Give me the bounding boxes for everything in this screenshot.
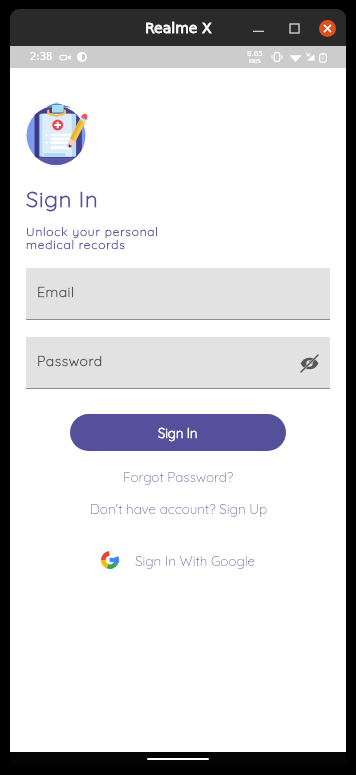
staticText: Sign In With Google — [135, 552, 256, 569]
staticText: Don't have account? Sign Up — [90, 500, 267, 517]
staticText: Sign In — [26, 185, 99, 213]
button[interactable]: Don't have account? Sign Up — [82, 495, 275, 522]
button[interactable]: Email — [26, 268, 330, 319]
button[interactable]: Minimize — [240, 11, 276, 45]
button[interactable]: Toggle password visibility — [298, 352, 320, 374]
button[interactable]: Forgot Password? — [115, 463, 242, 490]
staticText: 8.65 — [247, 50, 263, 58]
staticText: Password — [37, 352, 103, 370]
button[interactable]: Maximize — [276, 11, 312, 45]
staticText: Forgot Password? — [123, 468, 234, 485]
staticText: 2:38 — [30, 51, 53, 63]
button[interactable]: Password — [26, 337, 330, 388]
staticText: Realme X — [145, 20, 212, 36]
staticText: Sign In — [158, 425, 198, 441]
button[interactable]: Sign In With Google — [93, 546, 264, 574]
staticText: Unlock your personal medical records — [26, 224, 159, 252]
button[interactable]: Sign In — [70, 414, 286, 451]
button[interactable]: Close — [312, 13, 342, 43]
staticText: Email — [37, 283, 75, 301]
staticText: KB/S — [249, 58, 261, 64]
